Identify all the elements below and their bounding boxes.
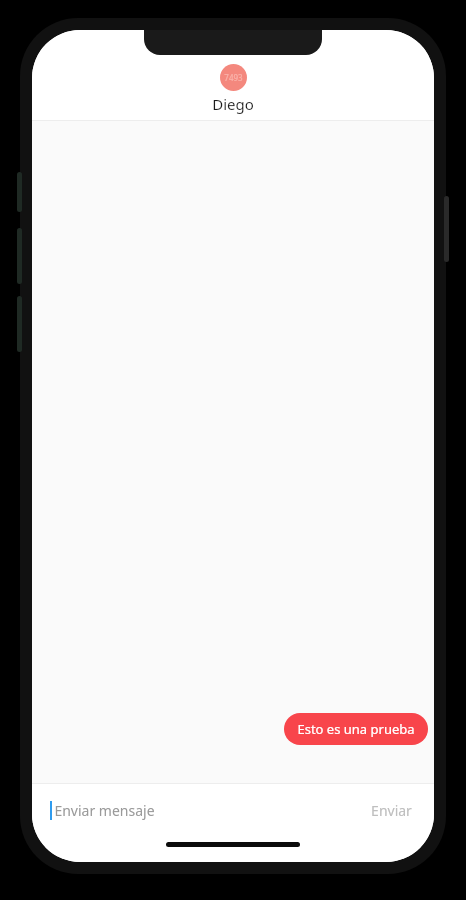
button[interactable]: Enviar mensaje xyxy=(32,784,349,836)
staticText: Enviar mensaje xyxy=(54,801,155,820)
button[interactable]: Contact avatar xyxy=(220,64,247,91)
staticText: Diego xyxy=(212,94,254,114)
button[interactable]: Esto es una prueba xyxy=(284,713,428,745)
button[interactable]: Enviar xyxy=(349,784,434,836)
staticText: 7493 xyxy=(224,72,243,83)
staticText: Enviar xyxy=(371,801,412,820)
staticText: Esto es una prueba xyxy=(297,720,415,738)
